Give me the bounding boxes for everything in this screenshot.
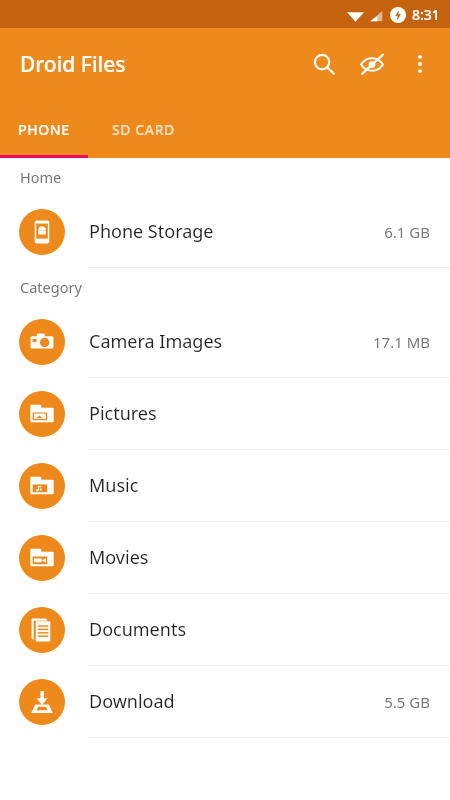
button[interactable]: Documents [0,594,450,665]
staticText: Camera Images [89,329,372,354]
button[interactable]: Pictures [0,378,450,449]
staticText: Documents [89,617,430,642]
button[interactable]: PHONE [0,100,88,158]
button[interactable]: Movies [0,522,450,593]
staticText: 5.5 GB [384,692,430,712]
staticText: Pictures [89,401,430,426]
staticText: Category [20,277,82,297]
staticText: Movies [89,545,430,570]
staticText: 8:31 [412,5,440,24]
staticText: PHONE [18,120,70,139]
button[interactable]: Camera Images [0,306,450,377]
button[interactable]: More options [396,40,444,88]
staticText: SD CARD [112,120,175,139]
button[interactable]: SD CARD [88,100,198,158]
button[interactable]: Download [0,666,450,737]
staticText: 6.1 GB [384,222,430,242]
button[interactable]: Phone Storage [0,196,450,267]
staticText: 17.1 MB [372,332,430,352]
button[interactable]: Music [0,450,450,521]
button[interactable]: Show hidden files [348,40,396,88]
staticText: Home [20,167,62,187]
staticText: Droid Files [20,50,126,79]
staticText: Phone Storage [89,219,384,244]
button[interactable]: Search [300,40,348,88]
staticText: Music [89,473,430,498]
staticText: Download [89,689,384,714]
